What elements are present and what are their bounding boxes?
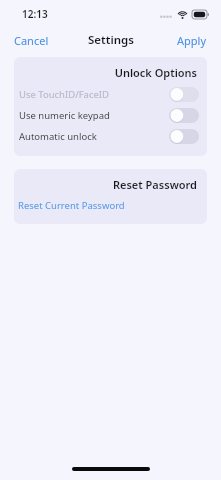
button[interactable]: Use TouchID/FaceID xyxy=(14,84,207,105)
staticText: Use numeric keypad xyxy=(19,109,169,122)
button[interactable]: Cancel xyxy=(0,29,63,52)
button[interactable]: Apply xyxy=(163,29,221,52)
button[interactable]: Reset Current Password xyxy=(14,196,207,214)
staticText: Apply xyxy=(177,33,207,48)
staticText: Use TouchID/FaceID xyxy=(19,88,169,101)
staticText: Reset Password xyxy=(14,177,197,192)
staticText: Cancel xyxy=(14,33,49,48)
staticText: Settings xyxy=(88,32,134,48)
staticText: Reset Current Password xyxy=(18,199,125,212)
staticText: Automatic unlock xyxy=(19,130,169,143)
button[interactable]: Use numeric keypad xyxy=(14,105,207,126)
button[interactable]: Automatic unlock xyxy=(14,126,207,147)
staticText: Unlock Options xyxy=(14,65,197,80)
staticText: 12:13 xyxy=(22,7,48,21)
